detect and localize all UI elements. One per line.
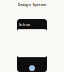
staticText: Design System <box>17 2 46 7</box>
staticText: Inbox <box>19 22 30 27</box>
